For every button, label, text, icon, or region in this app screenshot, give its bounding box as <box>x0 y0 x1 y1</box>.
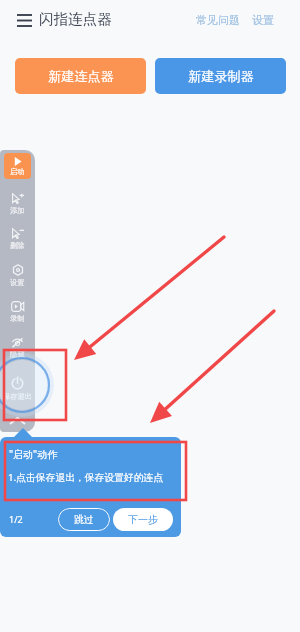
button[interactable]: 跳过 <box>58 508 110 531</box>
staticText: 闪指连点器 <box>39 10 112 28</box>
staticText: 隐藏 <box>10 350 25 359</box>
staticText: 新建录制器 <box>188 68 254 85</box>
staticText: 录制 <box>10 314 25 323</box>
staticText: "启动"动作 <box>9 447 58 461</box>
staticText: 1.点击保存退出，保存设置好的连点 <box>8 471 164 484</box>
staticText: 添加 <box>10 206 25 215</box>
button[interactable]: Menu <box>10 6 38 34</box>
button[interactable]: 添加 <box>0 192 35 226</box>
staticText: 保存退出 <box>3 392 32 401</box>
staticText: 设置 <box>252 13 274 27</box>
staticText: 启动 <box>10 167 25 176</box>
button[interactable]: 保存退出 <box>0 376 35 410</box>
button[interactable]: 常见问题 <box>191 8 245 32</box>
staticText: 下一步 <box>128 513 158 526</box>
button[interactable]: 新建连点器 <box>15 58 146 94</box>
button[interactable]: 设置 <box>0 263 35 297</box>
button[interactable]: 新建录制器 <box>155 58 286 94</box>
button[interactable]: 删除 <box>0 227 35 261</box>
staticText: 删除 <box>10 241 25 250</box>
button[interactable]: 下一步 <box>113 508 173 531</box>
staticText: 跳过 <box>74 514 94 526</box>
button[interactable]: Collapse <box>0 410 35 432</box>
button[interactable]: 设置 <box>247 8 279 32</box>
staticText: 常见问题 <box>196 13 240 27</box>
button[interactable]: 隐藏 <box>0 336 35 370</box>
staticText: 1/2 <box>9 513 23 525</box>
staticText: 新建连点器 <box>48 68 114 85</box>
button[interactable]: 录制 <box>0 300 35 334</box>
staticText: 设置 <box>10 278 25 287</box>
button[interactable]: 启动 <box>4 153 31 179</box>
